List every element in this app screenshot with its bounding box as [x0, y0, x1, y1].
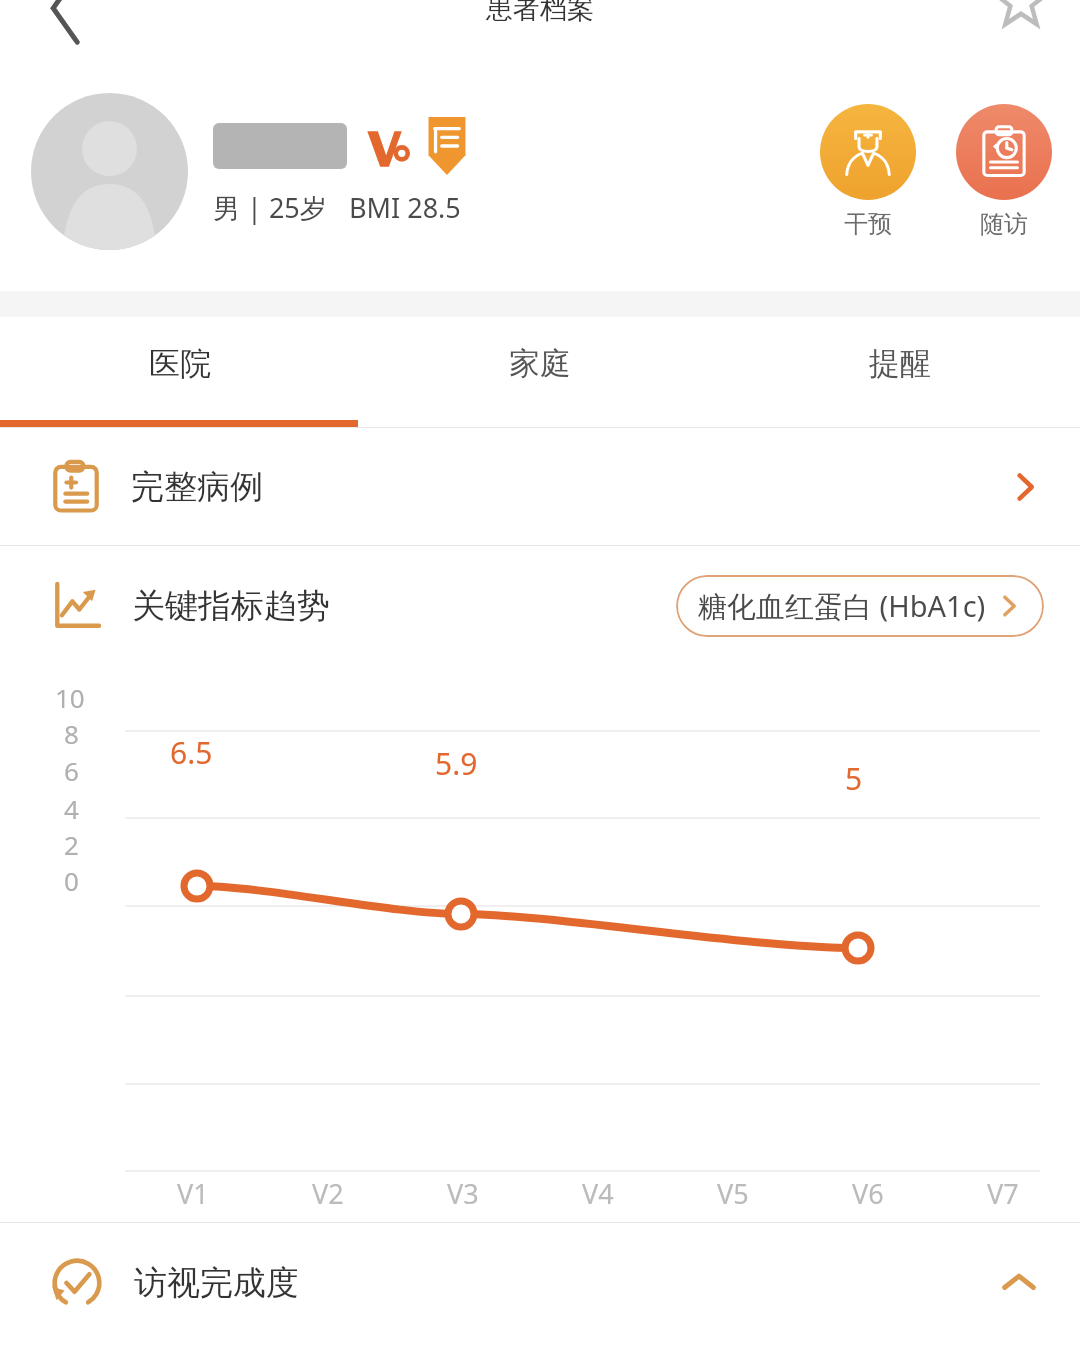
staticText: 4 — [64, 791, 79, 826]
staticText: 6 — [64, 753, 79, 788]
staticText: 干预 — [844, 209, 892, 239]
staticText: 10 — [55, 680, 85, 715]
button[interactable]: Favorite — [992, 0, 1050, 52]
staticText: 提醒 — [869, 344, 931, 383]
staticText: 医院 — [149, 344, 211, 383]
staticText: 2 — [64, 827, 79, 862]
button[interactable]: 关键指标趋势 — [48, 577, 330, 635]
staticText: 关键指标趋势 — [132, 585, 330, 627]
staticText: V2 — [312, 1175, 344, 1212]
staticText: V6 — [852, 1175, 884, 1212]
staticText: 5 — [845, 758, 863, 799]
button[interactable]: 干预 — [820, 104, 916, 239]
staticText: BMI 28.5 — [349, 189, 461, 226]
staticText: V7 — [987, 1175, 1019, 1212]
staticText: 随访 — [980, 209, 1028, 239]
button[interactable]: 访视完成度 — [0, 1223, 1080, 1343]
staticText: V1 — [177, 1175, 209, 1212]
staticText: 8 — [64, 716, 79, 751]
staticText: 5.9 — [435, 743, 478, 784]
staticText: V4 — [582, 1175, 614, 1212]
staticText: 访视完成度 — [134, 1262, 299, 1304]
staticText: 患者档案 — [486, 0, 594, 26]
staticText: 糖化血红蛋白 (HbA1c) — [698, 586, 986, 626]
button[interactable]: 完整病例 — [0, 428, 1080, 545]
staticText: 0 — [64, 863, 79, 898]
button[interactable]: 随访 — [956, 104, 1052, 239]
staticText: V5 — [717, 1175, 749, 1212]
button[interactable] — [31, 93, 188, 250]
staticText: V3 — [447, 1175, 479, 1212]
staticText: 完整病例 — [131, 466, 263, 508]
staticText: 6.5 — [170, 732, 213, 773]
button[interactable]: 医院 — [0, 317, 360, 427]
button[interactable]: 糖化血红蛋白 (HbA1c) — [676, 575, 1044, 637]
staticText: 家庭 — [509, 344, 571, 383]
staticText: 男 | 25岁 — [213, 189, 327, 226]
button[interactable]: 家庭 — [360, 317, 720, 427]
button[interactable]: Back — [40, 0, 96, 52]
button[interactable]: 提醒 — [720, 317, 1080, 427]
